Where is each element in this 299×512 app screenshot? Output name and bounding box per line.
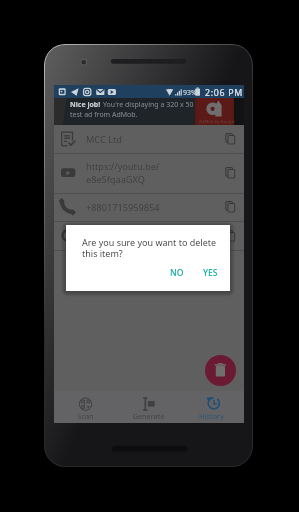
staticText: e8eSfqaaGXQ <box>86 173 145 186</box>
staticText: 2:06 PM <box>205 87 243 99</box>
staticText: WIFI:S:HomeNet; <box>86 229 160 242</box>
staticText: test ad from AdMob. <box>70 110 138 120</box>
button[interactable]: NO <box>165 265 189 281</box>
staticText: You're displaying a 320 x 50 <box>103 100 194 110</box>
button[interactable]: Delete <box>205 355 236 386</box>
staticText: History <box>199 411 224 421</box>
button[interactable]: Copy <box>222 199 238 215</box>
button[interactable]: Copy <box>222 228 238 244</box>
staticText: +8801715959854 <box>86 201 160 214</box>
staticText: Generate <box>132 411 165 421</box>
staticText: AdMob by Google <box>199 118 236 124</box>
button[interactable]: YES <box>198 265 223 281</box>
button[interactable]: History <box>180 391 243 423</box>
button[interactable]: https://youtu.be/ <box>54 153 244 193</box>
button[interactable]: Copy <box>222 165 238 181</box>
staticText: Are you sure you want to delete this ite… <box>82 236 219 262</box>
staticText: YES <box>203 267 218 279</box>
button[interactable]: WIFI:S:HomeNet; <box>54 221 244 250</box>
button[interactable]: +8801715959854 <box>54 193 244 221</box>
button[interactable]: Scan <box>54 391 117 423</box>
button[interactable]: Generate <box>117 391 180 423</box>
staticText: NO <box>170 267 184 279</box>
staticText: Scan <box>77 411 94 421</box>
staticText: https://youtu.be/ <box>86 160 160 173</box>
button[interactable]: Nice job! <box>54 98 244 125</box>
staticText: 93% <box>183 88 197 97</box>
staticText: Nice job! <box>70 100 103 110</box>
button[interactable]: Copy <box>222 131 238 147</box>
staticText: MCC Ltd <box>86 133 122 146</box>
button[interactable]: MCC Ltd <box>54 125 244 153</box>
